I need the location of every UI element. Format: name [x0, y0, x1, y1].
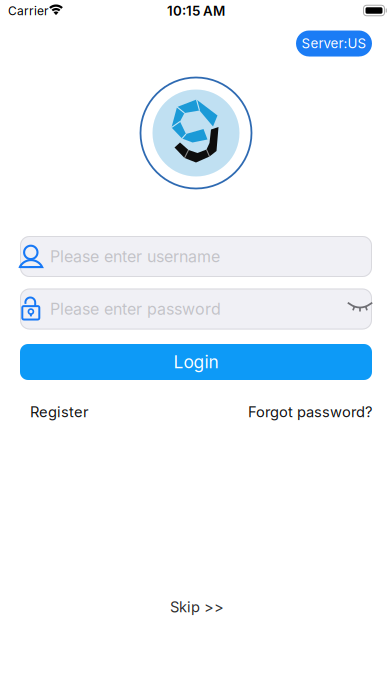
staticText: Server:US: [301, 36, 366, 51]
button[interactable]: Please enter password: [20, 288, 372, 329]
button[interactable]: Show password: [344, 292, 375, 322]
button[interactable]: Please enter username: [20, 236, 372, 277]
button[interactable]: Register: [30, 402, 130, 422]
staticText: Carrier: [8, 4, 49, 18]
button[interactable]: Forgot password?: [222, 402, 372, 422]
staticText: Login: [173, 352, 218, 372]
staticText: Please enter username: [50, 247, 220, 266]
button[interactable]: Server:US: [296, 30, 372, 56]
button[interactable]: Skip >>: [170, 598, 224, 616]
staticText: Please enter password: [50, 300, 221, 318]
staticText: Skip >>: [170, 598, 224, 616]
staticText: 10:15 AM: [167, 3, 225, 19]
staticText: Register: [30, 403, 89, 421]
staticText: Forgot password?: [248, 403, 372, 421]
button[interactable]: Login: [20, 344, 372, 380]
